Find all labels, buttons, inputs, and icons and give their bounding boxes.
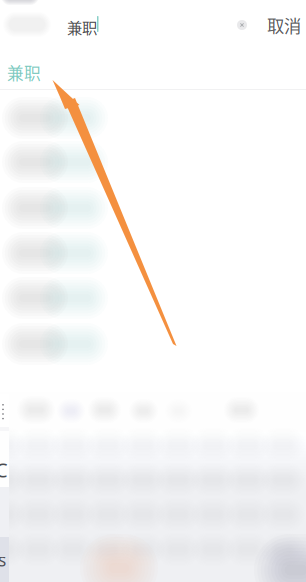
button[interactable]: 取消 [264, 11, 304, 39]
staticText: 兼职 [7, 60, 41, 84]
button[interactable]: Clear search text [228, 11, 256, 39]
staticText: 取消 [267, 12, 301, 38]
staticText: s [0, 548, 6, 572]
staticText: 兼职 [67, 16, 97, 38]
button[interactable]: 兼职 [0, 56, 306, 89]
staticText: C [0, 456, 8, 483]
